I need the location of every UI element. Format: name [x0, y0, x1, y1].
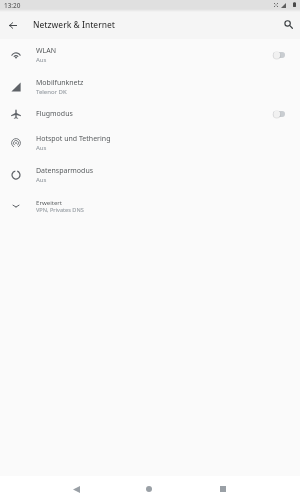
button[interactable]: Toggle WLAN — [264, 39, 300, 71]
button[interactable]: Mobilfunknetz — [0, 71, 300, 103]
button[interactable]: Flugmodus — [0, 103, 300, 124]
staticText: Erweitert — [36, 198, 63, 206]
staticText: Flugmodus — [36, 109, 73, 119]
button[interactable]: Home — [137, 477, 161, 500]
button[interactable]: Back — [64, 477, 88, 500]
staticText: Telenor DK — [36, 88, 67, 96]
button[interactable]: Hotspot und Tethering — [0, 127, 300, 159]
button[interactable]: Toggle Flugmodus — [264, 103, 300, 124]
staticText: 13:20 — [4, 1, 21, 10]
button[interactable]: Recents — [211, 477, 235, 500]
button[interactable]: Datensparmodus — [0, 159, 300, 191]
button[interactable]: Erweitert — [0, 191, 300, 221]
staticText: Datensparmodus — [36, 166, 94, 176]
staticText: Aus — [36, 144, 47, 152]
staticText: VPN, Privates DNS — [36, 206, 84, 214]
button[interactable]: Search — [275, 11, 300, 37]
staticText: Netzwerk & Internet — [33, 19, 116, 30]
staticText: WLAN — [36, 46, 56, 56]
button[interactable]: Back — [0, 12, 26, 38]
staticText: Hotspot und Tethering — [36, 134, 111, 144]
staticText: Aus — [36, 56, 47, 64]
button[interactable]: WLAN — [0, 39, 300, 71]
staticText: Mobilfunknetz — [36, 78, 84, 88]
staticText: Aus — [36, 176, 47, 184]
